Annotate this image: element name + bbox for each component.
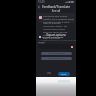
staticText: SEND [61,73,67,76]
button[interactable]: Send report now [41,57,72,60]
button[interactable]: Back [37,5,41,9]
button[interactable]: Translated with Google Gemini. Ask a que… [38,13,75,23]
button[interactable] [38,44,74,49]
staticText: Include screenshot [42,35,64,38]
staticText: Translated with Google Gemini. Ask a que… [43,15,74,23]
staticText: Send report now [48,57,65,60]
staticText: Add attachment [49,52,65,55]
staticText: Feedback/Translate [42,5,70,9]
staticText: See all [36,9,76,13]
staticText: Help us improve translation quality. Tel… [43,22,70,40]
staticText: 10:05 [38,0,45,4]
button[interactable]: Include screenshot [39,35,76,38]
staticText: A screenshot helps us understand the iss… [39,39,79,45]
staticText: Report options [36,33,76,37]
button[interactable]: SEND [58,72,70,76]
button[interactable]: Add attachment [41,52,72,55]
staticText: Details [38,41,46,44]
